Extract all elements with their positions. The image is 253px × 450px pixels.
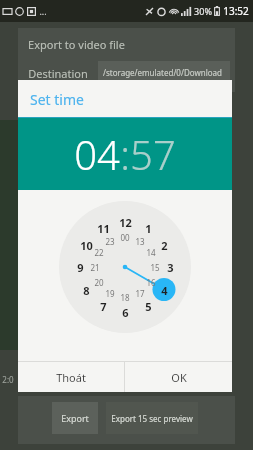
staticText: 9 — [77, 260, 84, 275]
staticText: 04 — [74, 127, 120, 181]
staticText: 22 — [94, 247, 104, 258]
button[interactable]: :57 — [120, 127, 176, 181]
staticText: /storage/emulated/0/Download — [103, 67, 222, 78]
staticText: 14 — [146, 247, 156, 258]
staticText: 6 — [122, 305, 129, 320]
staticText: 10 — [80, 238, 93, 253]
staticText: 13 — [135, 236, 145, 247]
staticText: 15 — [150, 262, 160, 273]
button[interactable]: Clock dial, hour 4 selected — [18, 190, 232, 361]
staticText: 00 — [120, 232, 130, 243]
staticText: 4 — [161, 283, 168, 298]
staticText: 17 — [135, 288, 145, 299]
staticText: 2:0 — [2, 374, 14, 385]
staticText: Export to video file — [28, 37, 125, 52]
button[interactable]: Thoát — [18, 362, 124, 392]
staticText: Thoát — [56, 370, 86, 385]
button[interactable]: Export 15 sec preview — [106, 402, 198, 434]
staticText: 5 — [145, 299, 152, 314]
staticText: 8 — [83, 283, 90, 298]
staticText: 20 — [94, 277, 104, 288]
staticText: 1 — [145, 221, 152, 236]
staticText: 23 — [105, 236, 115, 247]
staticText: 21 — [90, 262, 100, 273]
staticText: 30% — [194, 5, 212, 17]
staticText: 18 — [120, 292, 130, 303]
staticText: Export — [61, 412, 89, 424]
staticText: :57 — [120, 127, 176, 181]
button[interactable]: Export — [52, 402, 98, 434]
button[interactable]: 04 — [74, 127, 120, 181]
staticText: 19 — [105, 288, 115, 299]
staticText: Destination — [28, 66, 88, 81]
staticText: Set time — [30, 90, 84, 109]
staticText: 12 — [119, 215, 132, 230]
staticText: Export 15 sec preview — [111, 413, 193, 424]
button[interactable]: OK — [125, 362, 232, 392]
staticText: 16 — [146, 277, 156, 288]
staticText: OK — [171, 370, 187, 385]
staticText: 13:52 — [223, 4, 249, 18]
staticText: ... — [39, 5, 47, 17]
staticText: 2 — [161, 238, 168, 253]
staticText: 7 — [100, 299, 107, 314]
staticText: 3 — [167, 260, 174, 275]
staticText: 11 — [97, 221, 110, 236]
